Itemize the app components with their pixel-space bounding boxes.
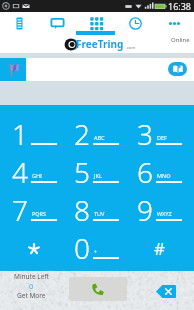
staticText: 3 (137, 115, 153, 153)
staticText: FreeTring (76, 37, 124, 51)
staticText: 5 (74, 153, 90, 191)
staticText: 4 (12, 153, 28, 191)
staticText: 1 (12, 115, 28, 153)
button[interactable]: 7 (3, 187, 65, 225)
button[interactable]: 0 (65, 225, 128, 263)
staticText: 6 (137, 153, 153, 191)
button[interactable]: 2 (65, 111, 128, 149)
staticText: GHI (32, 172, 42, 179)
button[interactable]: 3 (128, 111, 191, 149)
staticText: 0 (29, 281, 34, 291)
staticText: Online (171, 36, 190, 44)
staticText: DEF (157, 134, 167, 141)
staticText: .com (126, 45, 136, 50)
button[interactable] (3, 225, 65, 263)
button[interactable]: 6 (128, 149, 191, 187)
button[interactable]: Backspace (156, 285, 176, 298)
staticText: MNO (157, 172, 171, 179)
staticText: 0 (74, 229, 90, 267)
button[interactable]: 9 (128, 187, 191, 225)
button[interactable]: More (155, 12, 194, 35)
button[interactable]: Contacts (0, 12, 38, 35)
staticText: WXYZ (157, 210, 172, 217)
button[interactable]: History (116, 12, 155, 35)
button[interactable]: 5 (65, 149, 128, 187)
staticText: PQRS (32, 210, 47, 217)
staticText: ABC (94, 134, 105, 141)
staticText: Minute Left (14, 272, 49, 281)
button[interactable]: Select country (0, 58, 26, 81)
button[interactable]: Contacts (168, 62, 187, 76)
button[interactable]: 8 (65, 187, 128, 225)
button[interactable]: Messages (38, 12, 77, 35)
staticText: 8 (74, 191, 90, 229)
staticText: 16:38 (168, 0, 192, 12)
button[interactable]: 1 (3, 111, 65, 149)
staticText: TUV (94, 210, 105, 217)
staticText: # (154, 237, 165, 260)
staticText: 7 (12, 191, 28, 229)
button[interactable]: 4 (3, 149, 65, 187)
staticText: 9 (137, 191, 153, 229)
staticText: + (94, 248, 98, 255)
button[interactable]: # (128, 225, 191, 263)
staticText: Get More (17, 291, 46, 300)
staticText: 2 (74, 115, 90, 153)
staticText: JKL (94, 172, 102, 179)
button[interactable]: Keypad (77, 12, 116, 35)
button[interactable]: Call (69, 277, 127, 301)
